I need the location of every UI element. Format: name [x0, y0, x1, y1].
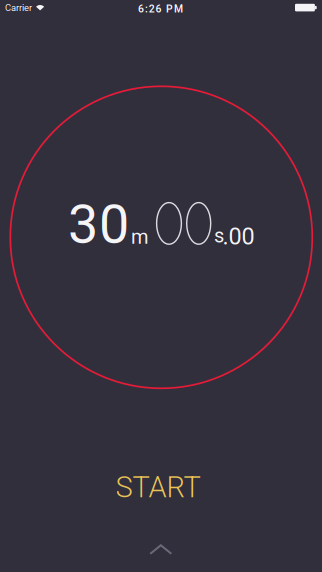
staticText: .00: [223, 223, 255, 250]
staticText: s: [214, 224, 224, 247]
staticText: m: [131, 225, 149, 248]
staticText: Carrier: [5, 2, 32, 13]
staticText: 30: [68, 193, 129, 256]
staticText: 6:26 PM: [138, 3, 183, 15]
button[interactable]: Show presets: [142, 537, 179, 562]
button[interactable]: START: [105, 464, 210, 510]
staticText: START: [115, 470, 200, 504]
